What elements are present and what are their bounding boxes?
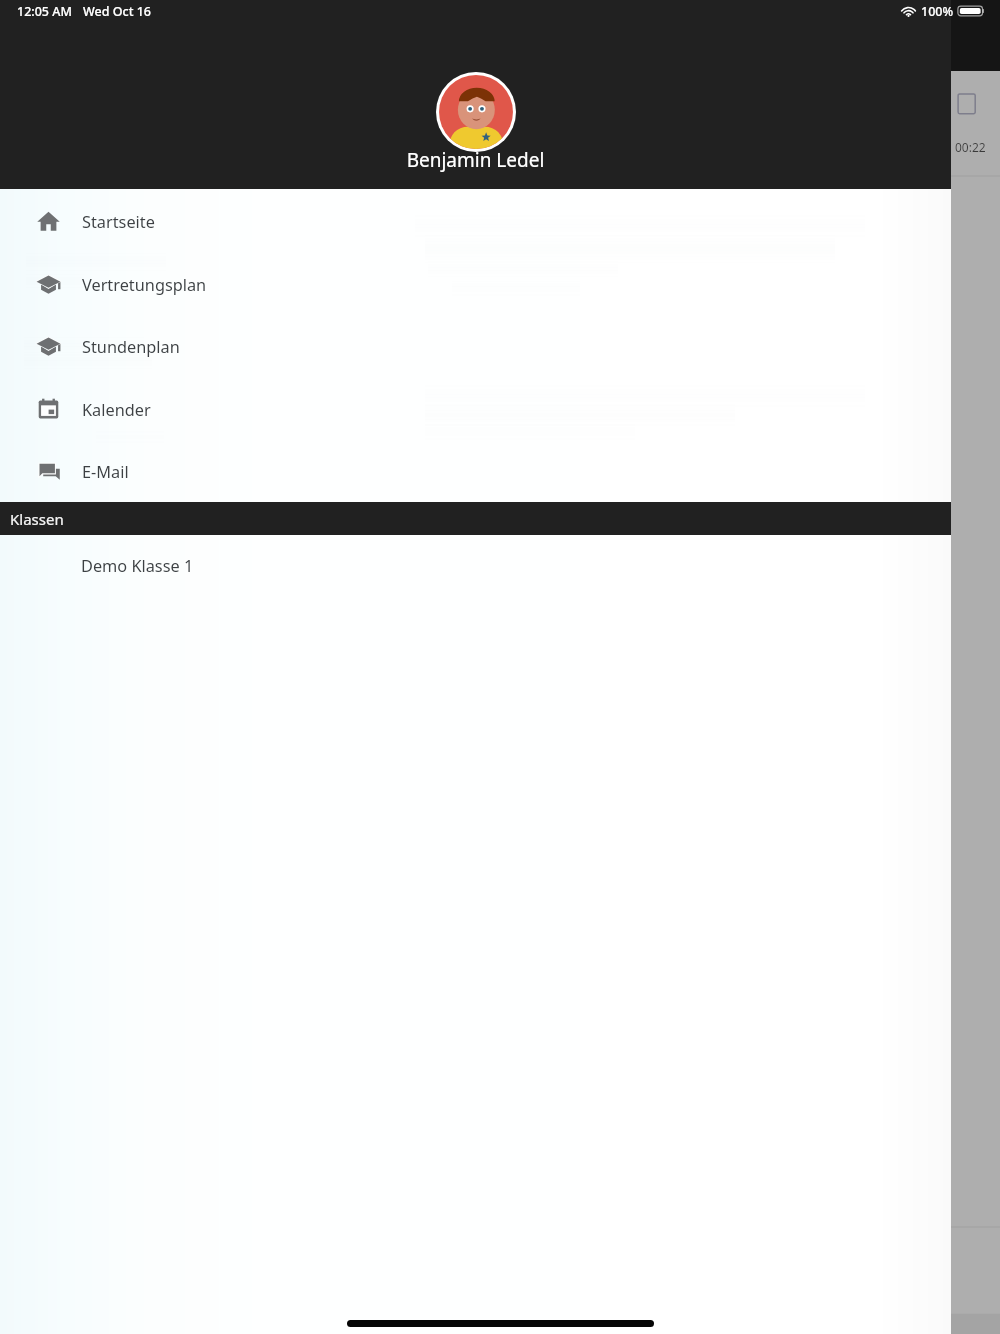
staticText: Stundenplan [82, 336, 180, 358]
staticText: E-Mail [82, 461, 129, 483]
other: Wi-Fi [901, 6, 916, 17]
button[interactable]: E-Mail [0, 440, 951, 502]
staticText: Benjamin Ledel [0, 147, 951, 173]
button[interactable]: Startseite [0, 189, 951, 253]
button[interactable]: Demo Klasse 1 [0, 535, 951, 597]
other: Battery full [957, 5, 985, 17]
staticText: Kalender [82, 399, 151, 421]
button[interactable]: Benjamin Ledel [0, 71, 951, 189]
button[interactable]: Stundenplan [0, 315, 951, 378]
staticText: Vertretungsplan [82, 274, 207, 296]
staticText: Startseite [82, 211, 155, 233]
staticText: 12:05 AM [17, 3, 72, 20]
button[interactable]: Vertretungsplan [0, 253, 951, 315]
staticText: 00:22 [955, 139, 986, 155]
staticText: Klassen [10, 509, 64, 529]
button[interactable]: Kalender [0, 378, 951, 440]
staticText: Demo Klasse 1 [81, 555, 194, 577]
staticText: Wed Oct 16 [83, 3, 151, 20]
button[interactable]: Close navigation drawer [951, 71, 1000, 1334]
staticText: 100% [921, 3, 954, 20]
